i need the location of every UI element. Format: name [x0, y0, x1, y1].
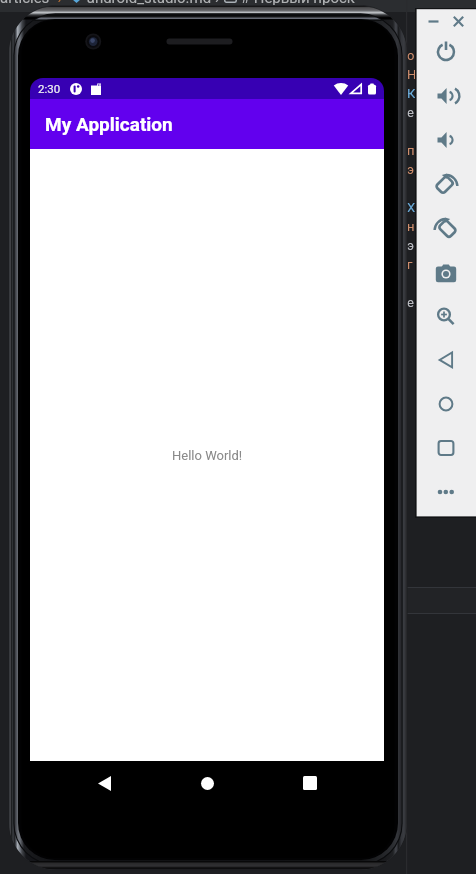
- staticText: е: [407, 295, 414, 310]
- button[interactable]: Rotate left: [415, 162, 476, 206]
- staticText: # Первый проск: [237, 0, 355, 7]
- staticText: н: [407, 219, 415, 234]
- button[interactable]: Recents: [288, 761, 332, 805]
- button[interactable]: Volume down: [415, 118, 476, 162]
- staticText: э: [407, 238, 414, 253]
- button[interactable]: Zoom: [415, 294, 476, 338]
- button[interactable]: Home: [185, 761, 229, 805]
- button[interactable]: More: [415, 470, 476, 514]
- staticText: Hello World!: [172, 448, 243, 463]
- button[interactable]: Close: [446, 9, 470, 33]
- staticText: 2:30: [38, 82, 61, 95]
- button[interactable]: Volume up: [415, 74, 476, 118]
- staticText: Х: [407, 200, 416, 215]
- staticText: п: [407, 143, 415, 158]
- staticText: ›: [215, 0, 224, 7]
- staticText: г: [407, 257, 413, 272]
- staticText: К: [407, 86, 416, 101]
- button[interactable]: Rotate right: [415, 206, 476, 250]
- staticText: android_studio.md: [83, 0, 215, 7]
- button[interactable]: Back: [415, 338, 476, 382]
- button[interactable]: My Application: [30, 99, 384, 149]
- button[interactable]: Back: [82, 761, 126, 805]
- button[interactable]: Home: [415, 382, 476, 426]
- button[interactable]: Overview: [415, 426, 476, 470]
- staticText: articles: [0, 0, 50, 7]
- button[interactable]: Screenshot: [415, 250, 476, 294]
- staticText: э: [407, 162, 414, 177]
- staticText: о: [407, 48, 415, 63]
- button[interactable]: Minimize: [421, 9, 445, 33]
- staticText: ›: [50, 0, 70, 7]
- staticText: Н: [407, 67, 417, 82]
- staticText: е: [407, 105, 414, 120]
- button[interactable]: Power: [415, 30, 476, 74]
- staticText: My Application: [45, 113, 173, 135]
